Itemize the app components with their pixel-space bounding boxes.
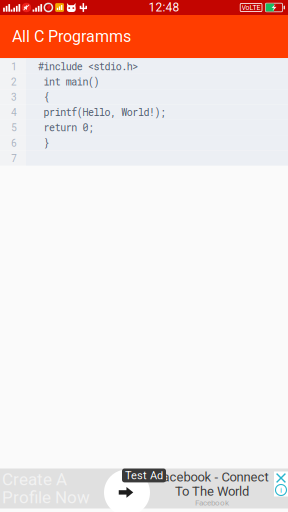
staticText: All C Programms	[12, 27, 131, 46]
staticText: 6	[11, 136, 17, 149]
staticText: Test Ad	[125, 469, 163, 482]
button[interactable]: All C Programms	[0, 15, 288, 58]
staticText: To The World	[175, 484, 249, 499]
staticText: Facebook	[195, 498, 229, 507]
staticText: printf(Hello, World!);	[38, 106, 166, 119]
staticText: int main()	[38, 75, 99, 88]
button[interactable]: Create A	[0, 472, 288, 512]
staticText: i	[280, 485, 282, 495]
staticText: VoLTE	[242, 3, 261, 12]
staticText: 5	[11, 121, 17, 134]
staticText: {	[38, 90, 49, 103]
staticText: Facebook - Connect	[155, 469, 268, 485]
staticText: 3	[11, 90, 17, 103]
button[interactable]: About this ad	[275, 484, 286, 495]
staticText: 12:48	[148, 0, 179, 15]
button[interactable]: Close ad	[275, 472, 286, 483]
staticText: }	[38, 136, 49, 149]
staticText: Create A	[2, 469, 67, 489]
staticText: #include <stdio.h>	[38, 60, 138, 73]
staticText: 7	[11, 151, 17, 165]
staticText: 2	[11, 75, 17, 88]
staticText: Profile Now	[2, 487, 90, 507]
staticText: 1	[11, 60, 17, 73]
staticText: 4	[11, 106, 17, 119]
staticText: return 0;	[38, 121, 94, 134]
